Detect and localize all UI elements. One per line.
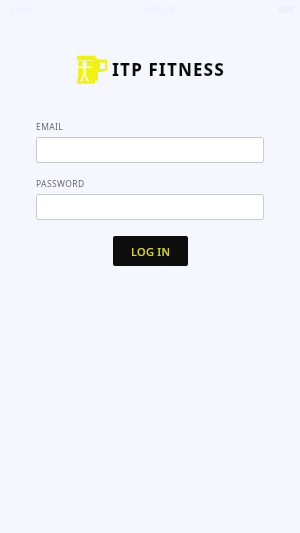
staticText: PASSWORD <box>36 178 85 190</box>
button[interactable] <box>36 194 264 220</box>
button[interactable]: LOG IN <box>113 236 188 266</box>
staticText: LOG IN <box>131 244 171 259</box>
staticText: ITP FITNESS <box>112 58 225 81</box>
button[interactable] <box>36 137 264 163</box>
staticText: EMAIL <box>36 121 64 133</box>
